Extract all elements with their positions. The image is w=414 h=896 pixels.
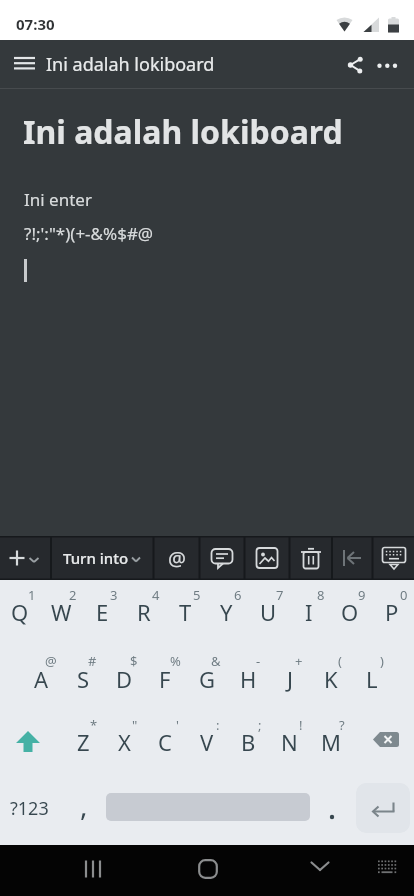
staticText: 5 — [193, 586, 201, 604]
staticText: 0 — [400, 586, 408, 604]
staticText: K — [324, 664, 338, 694]
button[interactable] — [63, 708, 104, 772]
button[interactable] — [104, 644, 145, 708]
button[interactable]: @ — [154, 536, 199, 580]
button[interactable] — [187, 708, 228, 772]
staticText: T — [179, 597, 192, 627]
button[interactable] — [311, 708, 352, 772]
staticText: @ — [168, 545, 186, 572]
button[interactable] — [200, 536, 244, 580]
staticText: Q — [11, 597, 29, 627]
button[interactable] — [248, 580, 289, 644]
staticText: R — [137, 597, 151, 627]
staticText: L — [366, 664, 378, 694]
staticText: N — [281, 727, 298, 757]
staticText: 1 — [28, 586, 36, 604]
button[interactable] — [62, 776, 104, 840]
staticText: 3 — [110, 586, 118, 604]
staticText: G — [199, 664, 216, 694]
staticText: % — [170, 652, 181, 670]
staticText: X — [118, 727, 131, 757]
button[interactable] — [290, 536, 331, 580]
staticText: 6 — [234, 586, 242, 604]
staticText: E — [96, 597, 109, 627]
staticText: + — [295, 652, 303, 670]
button[interactable] — [145, 708, 186, 772]
button[interactable] — [187, 644, 228, 708]
button[interactable] — [0, 580, 41, 644]
button[interactable] — [372, 580, 413, 644]
staticText: # — [88, 652, 97, 670]
staticText: 8 — [317, 586, 325, 604]
button[interactable] — [352, 708, 414, 772]
button[interactable] — [6, 47, 42, 81]
staticText: J — [287, 664, 294, 694]
staticText: 9 — [358, 586, 366, 604]
staticText: : — [216, 716, 220, 734]
button[interactable] — [373, 536, 414, 580]
staticText: - — [256, 652, 261, 670]
button[interactable]: Turn into — [52, 536, 153, 580]
staticText: " — [132, 716, 138, 734]
staticText: O — [341, 597, 359, 627]
button[interactable] — [352, 644, 393, 708]
button[interactable] — [356, 783, 410, 833]
staticText: Z — [77, 727, 90, 757]
button[interactable] — [124, 580, 165, 644]
button[interactable] — [188, 849, 228, 889]
staticText: ; — [258, 716, 262, 734]
button[interactable] — [206, 580, 247, 644]
button[interactable] — [368, 848, 406, 886]
button[interactable] — [228, 708, 269, 772]
button[interactable] — [63, 644, 104, 708]
button[interactable] — [21, 644, 62, 708]
staticText: V — [200, 727, 214, 757]
staticText: Ini adalah lokiboard — [23, 110, 343, 154]
staticText: ?!;':"*)(+-&%$#@ — [24, 222, 154, 245]
button[interactable] — [312, 776, 352, 840]
button[interactable] — [332, 536, 372, 580]
staticText: ?123 — [10, 796, 49, 821]
button[interactable] — [41, 580, 82, 644]
staticText: D — [116, 664, 133, 694]
staticText: F — [159, 664, 171, 694]
button[interactable] — [300, 846, 340, 886]
button[interactable] — [228, 644, 269, 708]
button[interactable] — [270, 644, 311, 708]
staticText: H — [240, 664, 257, 694]
staticText: 7 — [276, 586, 284, 604]
staticText: B — [241, 727, 256, 757]
staticText: & — [211, 652, 221, 670]
staticText: P — [385, 597, 399, 627]
staticText: C — [158, 727, 172, 757]
button[interactable] — [289, 580, 330, 644]
button[interactable] — [330, 580, 371, 644]
staticText: I — [305, 597, 313, 627]
button[interactable] — [104, 708, 145, 772]
button[interactable] — [269, 708, 310, 772]
staticText: U — [260, 597, 277, 627]
staticText: Turn into — [63, 548, 129, 568]
button[interactable] — [337, 47, 371, 81]
staticText: W — [51, 597, 72, 627]
staticText: $ — [130, 652, 138, 670]
staticText: 2 — [69, 586, 77, 604]
button[interactable] — [0, 708, 62, 772]
button[interactable] — [311, 644, 352, 708]
staticText: ? — [339, 716, 345, 734]
staticText: 4 — [152, 586, 160, 604]
staticText: ( — [338, 652, 342, 670]
button[interactable] — [73, 849, 113, 889]
button[interactable] — [145, 644, 186, 708]
button[interactable] — [0, 536, 51, 580]
button[interactable] — [245, 536, 289, 580]
staticText: Ini enter — [24, 188, 92, 211]
staticText: ) — [380, 652, 384, 670]
staticText: ' — [176, 716, 179, 734]
button[interactable] — [165, 580, 206, 644]
staticText: M — [321, 727, 341, 757]
button[interactable] — [372, 47, 408, 81]
button[interactable] — [2, 776, 58, 840]
button[interactable] — [82, 580, 123, 644]
